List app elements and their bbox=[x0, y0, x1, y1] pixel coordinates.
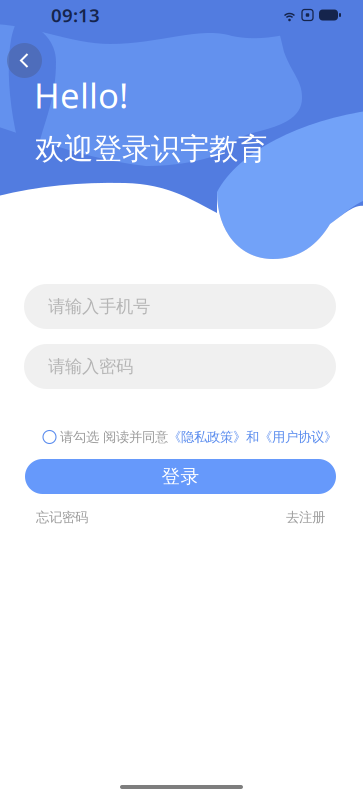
staticText: 请勾选 阅读并同意 bbox=[60, 429, 168, 445]
staticText: Hello! bbox=[34, 72, 128, 118]
staticText: 登录 bbox=[161, 465, 199, 488]
staticText: 请输入手机号 bbox=[48, 296, 150, 317]
button[interactable]: 请勾选 阅读并同意 bbox=[43, 427, 337, 447]
staticText: 欢迎登录识宇教育 bbox=[35, 131, 267, 167]
button[interactable]: 忘记密码 bbox=[36, 509, 88, 525]
staticText: 去注册 bbox=[286, 509, 325, 525]
staticText: 《隐私政策》和《用户协议》 bbox=[168, 429, 337, 445]
button[interactable]: 去注册 bbox=[286, 509, 325, 525]
button[interactable]: 登录 bbox=[25, 459, 336, 494]
button[interactable]: Back bbox=[3, 39, 46, 82]
staticText: 09:13 bbox=[51, 3, 100, 27]
staticText: 请输入密码 bbox=[48, 356, 133, 377]
staticText: 忘记密码 bbox=[36, 509, 88, 525]
